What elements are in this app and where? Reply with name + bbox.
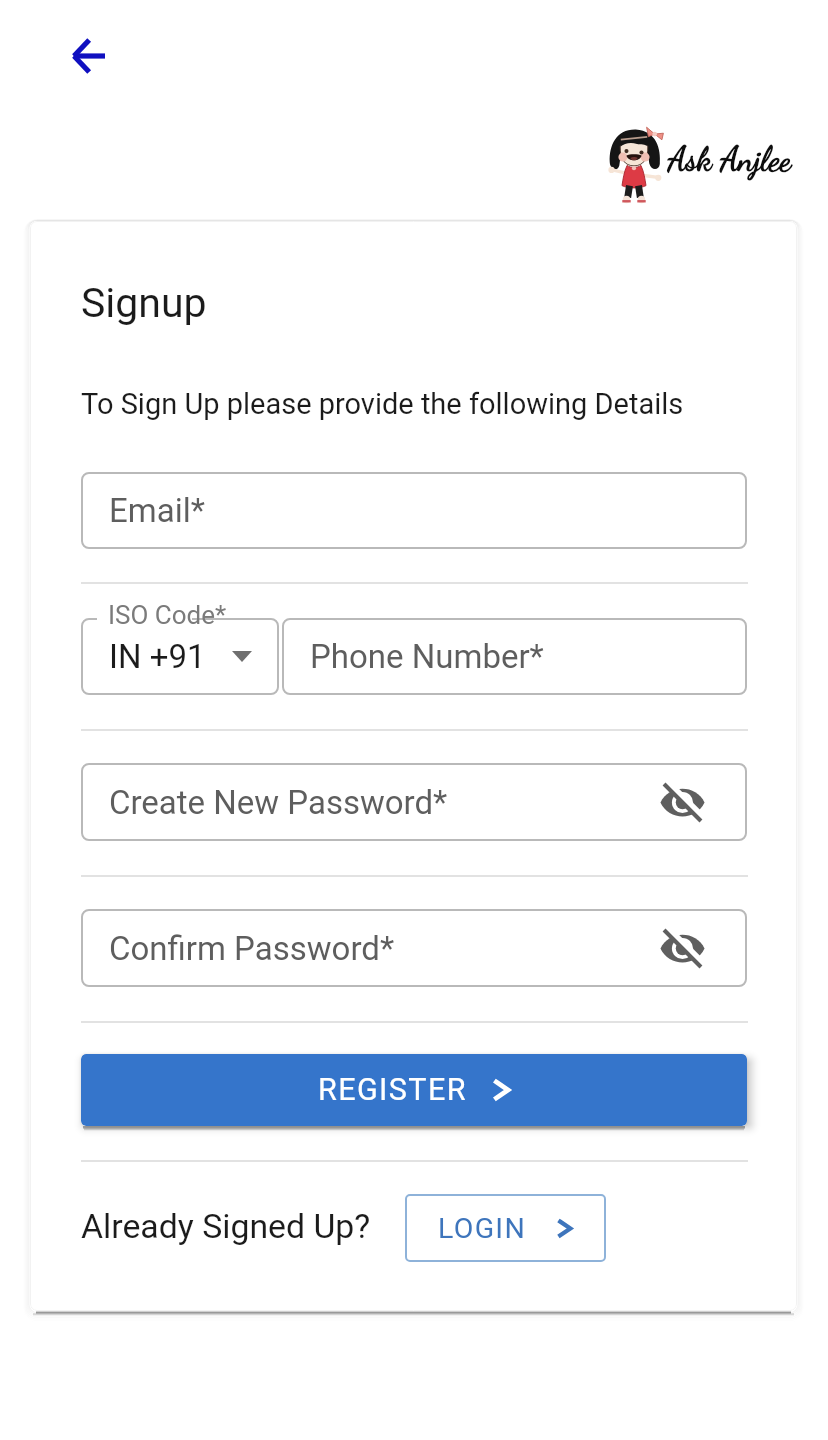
button[interactable]: IN +91 — [81, 618, 279, 695]
button[interactable]: Phone Number* — [282, 618, 747, 695]
staticText: To Sign Up please provide the following … — [81, 387, 684, 421]
staticText: IN +91 — [109, 637, 206, 676]
staticText: Ask Anjlee — [668, 140, 791, 180]
button[interactable]: Toggle password visibility — [649, 769, 715, 835]
staticText: Signup — [81, 279, 207, 327]
other: Ask Anjlee logo — [604, 118, 664, 210]
button[interactable]: REGISTER — [81, 1054, 747, 1126]
staticText: Create New Password* — [109, 783, 448, 822]
staticText: Email* — [109, 491, 205, 530]
button[interactable]: Email* — [81, 472, 747, 549]
staticText: LOGIN — [438, 1212, 527, 1245]
button[interactable]: Create New Password* — [81, 763, 747, 841]
staticText: Confirm Password* — [109, 929, 395, 968]
staticText: Phone Number* — [310, 637, 544, 676]
button[interactable]: Back — [54, 22, 122, 90]
button[interactable]: LOGIN — [405, 1194, 606, 1262]
staticText: ISO Code* — [108, 600, 227, 630]
button[interactable]: Confirm Password* — [81, 909, 747, 987]
staticText: REGISTER — [318, 1072, 467, 1108]
staticText: Already Signed Up? — [81, 1207, 371, 1247]
button[interactable]: Toggle password visibility — [649, 915, 715, 981]
